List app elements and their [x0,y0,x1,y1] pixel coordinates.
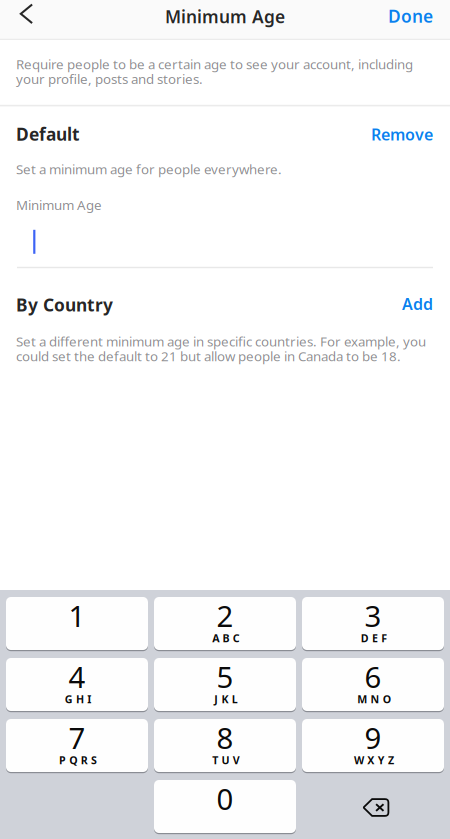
staticText: MNO [357,692,391,706]
staticText: Set a minimum age for people everywhere. [16,160,282,178]
staticText: WXYZ [354,753,394,767]
button[interactable]: 4 [6,658,148,712]
button[interactable]: Done [363,0,433,35]
staticText: TUV [212,753,240,767]
staticText: Done [388,5,433,28]
staticText: 7 [68,718,85,757]
staticText: Require people to be a certain age to se… [16,55,413,88]
button[interactable]: 9 [302,719,444,773]
button[interactable]: Back [3,0,49,33]
staticText: 2 [216,596,233,635]
staticText: 5 [216,657,233,696]
staticText: DEF [361,631,387,645]
button[interactable]: Add [363,291,433,317]
staticText: 4 [68,657,85,696]
button[interactable]: Remove [353,121,433,147]
staticText: JKL [214,692,238,706]
button[interactable]: 3 [302,597,444,651]
button[interactable]: 5 [154,658,296,712]
staticText: PQRS [59,753,97,767]
staticText: 3 [364,596,381,635]
button[interactable]: 2 [154,597,296,651]
staticText: By Country [16,293,113,316]
button[interactable]: 6 [302,658,444,712]
staticText: Default [16,122,80,145]
button[interactable]: 0 [154,780,296,834]
staticText: Set a different minimum age in specific … [16,332,426,365]
button[interactable]: 1 [6,597,148,651]
staticText: GHI [65,692,91,706]
staticText: Remove [371,124,433,145]
staticText: Add [402,293,433,314]
staticText: 1 [68,596,85,635]
staticText: 6 [364,657,381,696]
staticText: 8 [216,718,233,757]
staticText: Minimum Age [165,5,285,28]
staticText: ABC [212,631,240,645]
staticText: Minimum Age [16,196,102,214]
staticText: 0 [216,779,233,818]
button[interactable]: 7 [6,719,148,773]
staticText: 9 [364,718,381,757]
button[interactable]: Delete [302,780,444,833]
button[interactable]: 8 [154,719,296,773]
